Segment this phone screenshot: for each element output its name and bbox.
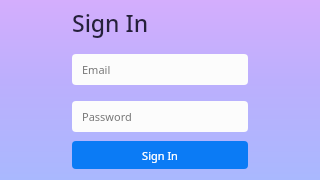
staticText: Sign In	[72, 7, 149, 38]
button[interactable]: Sign In	[72, 141, 248, 169]
staticText: Email	[82, 62, 111, 77]
staticText: Sign In	[142, 148, 178, 163]
button[interactable]: Email	[72, 54, 248, 85]
button[interactable]: Password	[72, 101, 248, 132]
staticText: Password	[82, 109, 132, 124]
